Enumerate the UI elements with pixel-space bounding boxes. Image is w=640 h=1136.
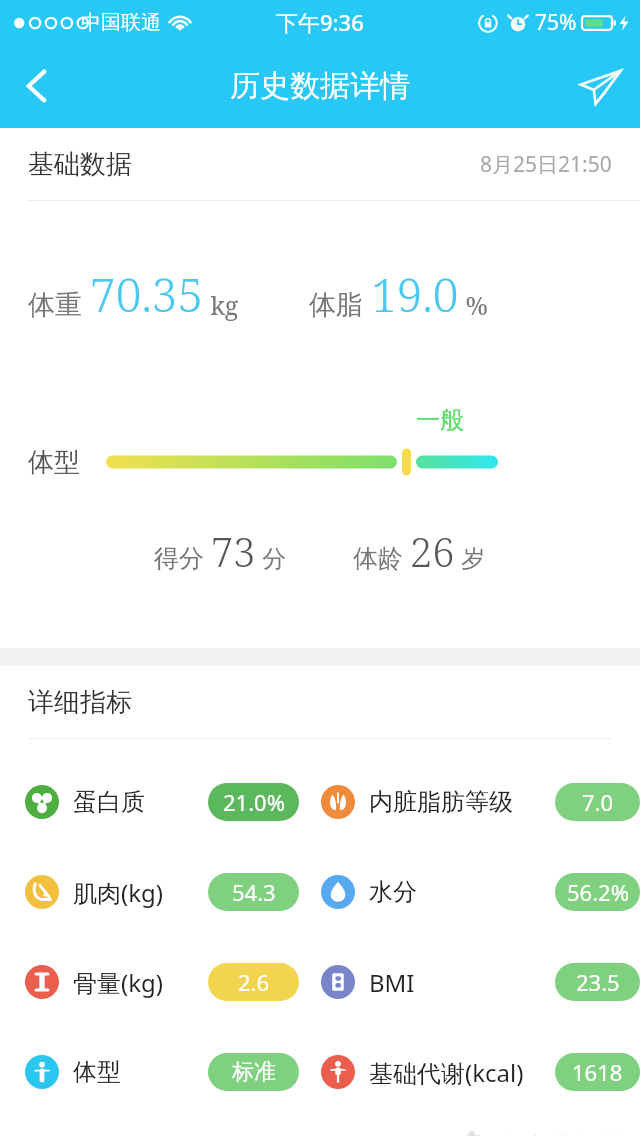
button[interactable]: 内脏脂肪等级 [321, 783, 640, 821]
staticText: BMI [369, 966, 415, 999]
staticText: 26 [410, 524, 455, 578]
staticText: 得分 [154, 540, 211, 574]
staticText: 56.2% [567, 877, 629, 907]
staticText: 7.0 [582, 787, 614, 817]
staticText: 体脂 [309, 285, 371, 322]
staticText: 8月25日21:50 [480, 150, 612, 179]
button[interactable]: 肌肉(kg) [25, 873, 299, 911]
staticText: 2.6 [238, 967, 270, 997]
button[interactable]: BMI [321, 963, 640, 1001]
staticText: 体龄 [353, 540, 410, 574]
staticText: 水分 [369, 877, 417, 907]
staticText: 体重 [28, 285, 90, 322]
staticText: 体型 [28, 446, 80, 479]
staticText: 下午9:36 [276, 7, 364, 37]
staticText: % [459, 288, 488, 322]
staticText: 肌肉(kg) [73, 876, 163, 909]
staticText: 21.0% [223, 787, 285, 817]
button[interactable]: Share [560, 44, 640, 128]
staticText: 19.0 [371, 263, 459, 326]
staticText: 标准 [232, 1058, 276, 1086]
staticText: 骨量(kg) [73, 966, 163, 999]
staticText: 蛋白质 [73, 787, 145, 817]
staticText: 分 [256, 541, 287, 574]
staticText: 内脏脂肪等级 [369, 787, 513, 817]
staticText: 73 [211, 524, 256, 578]
button[interactable]: 水分 [321, 873, 640, 911]
staticText: 54.3 [232, 877, 276, 907]
staticText: 中国联通 [81, 10, 161, 35]
staticText: 1618 [572, 1057, 623, 1087]
staticText: 体型 [73, 1057, 121, 1087]
staticText: 一般 [416, 405, 464, 435]
staticText: 基础数据 [28, 148, 132, 181]
staticText: 详细指标 [28, 686, 132, 719]
button[interactable]: 骨量(kg) [25, 963, 299, 1001]
staticText: 值 [463, 1131, 481, 1136]
button[interactable]: 基础代谢(kcal) [321, 1053, 640, 1091]
staticText: 75% [535, 8, 577, 37]
button[interactable]: 蛋白质 [25, 783, 299, 821]
staticText: 70.35 [90, 263, 204, 326]
button[interactable]: Back [0, 44, 74, 128]
button[interactable]: 体型 [25, 1053, 299, 1091]
staticText: 23.5 [576, 967, 620, 997]
staticText: 基础代谢(kcal) [369, 1056, 524, 1089]
staticText: 历史数据详情 [230, 67, 410, 105]
staticText: kg [204, 288, 239, 322]
staticText: 岁 [455, 541, 486, 574]
